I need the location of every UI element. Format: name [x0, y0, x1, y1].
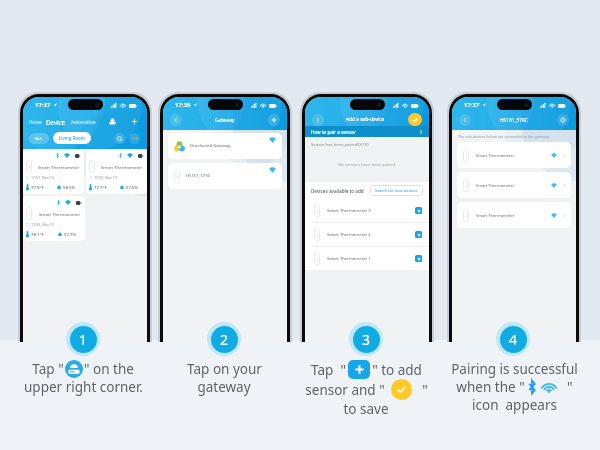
staticText: 1	[79, 330, 88, 349]
button[interactable]: Add gateway	[107, 116, 118, 127]
staticText: Distributed Gateway	[190, 143, 231, 149]
staticText: 4	[509, 330, 518, 349]
staticText: 17:57, Nov 13	[31, 175, 54, 180]
staticText: 78.1°F	[31, 231, 44, 237]
staticText: 3	[362, 330, 371, 349]
button[interactable]: Step 2	[207, 322, 241, 356]
button[interactable]: Distributed Gateway	[168, 133, 282, 159]
staticText: Smart Thermometer 3	[327, 208, 371, 214]
button[interactable]: Smart Thermometer	[457, 142, 571, 168]
staticText: Smart Thermometer 1	[327, 256, 371, 262]
staticText: Tap "	[32, 360, 64, 378]
button[interactable]: Smart Thermometer	[457, 202, 571, 228]
button[interactable]: Smart Thermometer	[23, 149, 84, 194]
staticText: upper right corner.	[24, 378, 143, 396]
staticText: Smart Thermometer	[476, 213, 515, 218]
staticText: 77.7°F	[94, 184, 107, 190]
button[interactable]: Step 4	[496, 322, 530, 356]
button[interactable]: Back	[170, 114, 182, 126]
staticText: gateway	[197, 378, 251, 396]
staticText: Smart Thermometer	[101, 164, 143, 170]
button[interactable]: More	[129, 133, 140, 144]
staticText: 57.6%	[126, 184, 139, 190]
button[interactable]: How to pair a sensor	[305, 126, 429, 137]
button[interactable]: Save	[408, 113, 422, 126]
staticText: Search for new sensors	[375, 188, 418, 193]
staticText: Pairing is successful	[451, 360, 578, 378]
button[interactable]: Home	[29, 119, 42, 125]
button[interactable]: Smart Thermometer 3	[305, 199, 429, 222]
button[interactable]: Step 3	[349, 322, 383, 356]
staticText: Living Room	[59, 135, 85, 141]
staticText: Automation	[71, 119, 96, 125]
button[interactable]: Add	[129, 116, 140, 127]
staticText: Smart Thermometer	[38, 164, 80, 170]
staticText: 17:37	[464, 101, 480, 109]
button[interactable]: Smart Thermometer	[86, 149, 147, 194]
staticText: Tap "	[311, 361, 346, 379]
button[interactable]: ALL	[29, 133, 49, 144]
button[interactable]: Smart Thermometer	[23, 196, 85, 241]
staticText: ALL	[35, 136, 43, 142]
staticText: 57.7%	[64, 231, 77, 237]
button[interactable]: Step 1	[66, 322, 100, 356]
staticText: Home	[29, 119, 42, 125]
staticText: No sensors have been paired	[338, 162, 396, 168]
button[interactable]: Smart Thermometer 2	[305, 223, 429, 246]
button[interactable]: Add Smart Thermometer 1	[415, 255, 422, 262]
staticText: " on the	[84, 360, 134, 378]
button[interactable]: Add Smart Thermometer 2	[415, 231, 422, 238]
staticText: How to pair a sensor	[311, 129, 356, 135]
staticText: Smart Thermometer	[39, 211, 81, 217]
staticText: 17:36	[175, 101, 191, 109]
staticText: 17:53, Nov 13	[31, 222, 54, 227]
staticText: 17:57	[35, 101, 51, 109]
staticText: 2	[220, 330, 229, 349]
button[interactable]: Living Room	[53, 132, 91, 144]
staticText: 58.5%	[63, 184, 76, 190]
button[interactable]: Smart Thermometer 1	[305, 247, 429, 270]
button[interactable]: Search	[114, 133, 125, 144]
staticText: HS161_579C	[186, 173, 211, 179]
staticText: Devices available to add	[311, 188, 364, 194]
staticText: 17:57, Nov 13	[94, 175, 117, 180]
staticText: The sub-devices below are connected to t…	[458, 134, 550, 139]
staticText: Sensor has been paired(0/10)	[311, 142, 369, 148]
staticText: Smart Thermometer	[476, 183, 515, 188]
button[interactable]: Add Smart Thermometer 3	[415, 207, 422, 214]
staticText: HS161_579C	[500, 117, 528, 124]
staticText: Smart Thermometer 2	[327, 232, 371, 238]
staticText: Smart Thermometer	[476, 153, 515, 158]
staticText: sensor and "	[305, 381, 385, 399]
staticText: to save	[343, 400, 389, 418]
staticText: icon appears	[472, 396, 557, 414]
button[interactable]: Add	[268, 114, 280, 126]
button[interactable]: Search for new sensors	[370, 185, 423, 196]
staticText: Add a sub-device	[346, 116, 385, 123]
staticText: 77.9°F	[31, 184, 44, 190]
button[interactable]: Smart Thermometer	[457, 172, 571, 198]
button[interactable]: Settings	[557, 114, 569, 126]
button[interactable]: Device	[46, 118, 66, 126]
staticText: Gateway	[215, 117, 235, 124]
button[interactable]: Back	[312, 114, 324, 126]
button[interactable]: HS161_579C	[168, 163, 282, 189]
staticText: Device	[46, 118, 66, 126]
staticText: "	[422, 381, 428, 399]
staticText: "	[556, 378, 573, 396]
button[interactable]: Back	[459, 114, 471, 126]
staticText: " to add	[372, 361, 422, 379]
staticText: Tap on your	[187, 360, 262, 378]
staticText: when the "	[456, 378, 525, 396]
button[interactable]: Automation	[71, 119, 96, 125]
